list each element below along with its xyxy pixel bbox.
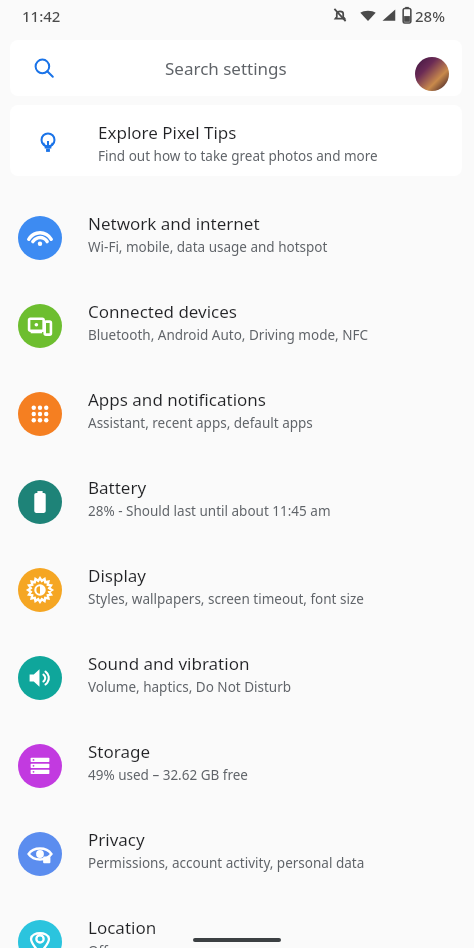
staticText: 28% [415, 6, 445, 26]
button[interactable]: Storage [0, 733, 474, 813]
staticText: Apps and notifications [88, 388, 266, 411]
button[interactable]: Location [0, 909, 474, 948]
button[interactable]: Sound and vibration [0, 645, 474, 725]
staticText: Styles, wallpapers, screen timeout, font… [88, 590, 364, 608]
button[interactable]: Network and internet [0, 205, 474, 285]
staticText: Location [88, 916, 157, 939]
staticText: 49% used – 32.62 GB free [88, 766, 248, 784]
staticText: Storage [88, 740, 151, 763]
staticText: Display [88, 564, 146, 587]
staticText: Battery [88, 476, 147, 499]
button[interactable]: Explore Pixel Tips [10, 105, 462, 176]
staticText: Wi-Fi, mobile, data usage and hotspot [88, 238, 328, 256]
staticText: Permissions, account activity, personal … [88, 854, 365, 872]
staticText: Explore Pixel Tips [98, 121, 237, 144]
button[interactable]: Apps and notifications [0, 381, 474, 461]
staticText: Search settings [165, 57, 287, 80]
button[interactable]: Display [0, 557, 474, 637]
staticText: Assistant, recent apps, default apps [88, 414, 313, 432]
staticText: Find out how to take great photos and mo… [98, 147, 378, 165]
staticText: Sound and vibration [88, 652, 250, 675]
staticText: 28% - Should last until about 11:45 am [88, 502, 331, 520]
button[interactable]: Connected devices [0, 293, 474, 373]
staticText: Privacy [88, 828, 145, 851]
staticText: 11:42 [22, 6, 61, 26]
staticText: Network and internet [88, 212, 260, 235]
button[interactable]: Search settings [10, 40, 462, 96]
staticText: Connected devices [88, 300, 238, 323]
button[interactable]: Privacy [0, 821, 474, 901]
button[interactable]: Battery [0, 469, 474, 549]
staticText: Volume, haptics, Do Not Disturb [88, 678, 292, 696]
staticText: Bluetooth, Android Auto, Driving mode, N… [88, 326, 368, 344]
staticText: Off [88, 942, 108, 948]
button[interactable]: Account profile [415, 57, 449, 91]
